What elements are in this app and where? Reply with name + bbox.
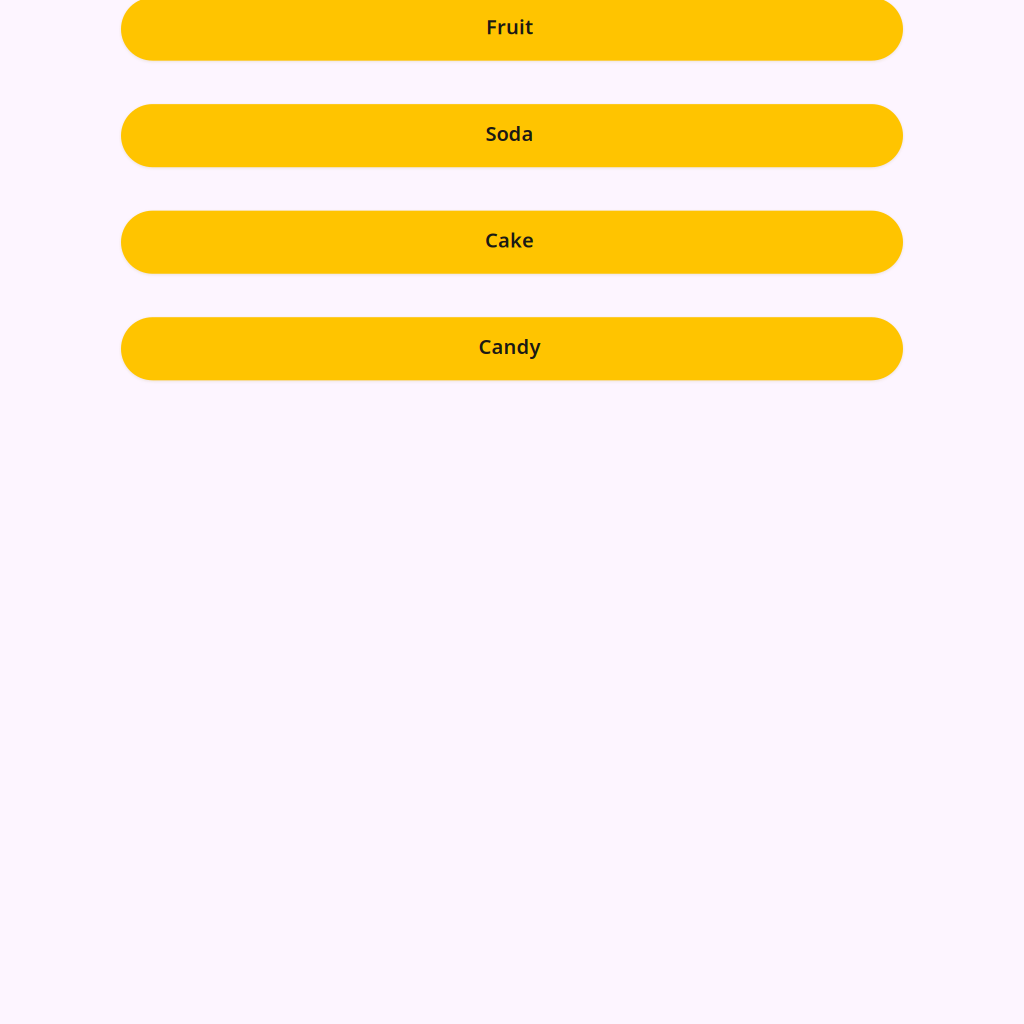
button[interactable]: Soda [121,104,903,167]
staticText: Soda [485,120,533,146]
staticText: Fruit [486,13,533,40]
button[interactable]: Cake [121,211,903,274]
button[interactable]: Fruit [121,0,903,61]
staticText: Candy [478,333,540,360]
staticText: Cake [485,226,534,253]
button[interactable]: Candy [121,317,903,380]
